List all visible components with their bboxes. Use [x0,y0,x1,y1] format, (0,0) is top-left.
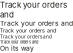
staticText: Track your orders and [0,34,52,39]
staticText: Track your orders and [0,19,73,27]
staticText: Track your orders and [0,39,38,44]
staticText: On its way [0,44,34,52]
staticText: Track your orders and [0,0,67,19]
staticText: Track your orders and [0,27,56,34]
